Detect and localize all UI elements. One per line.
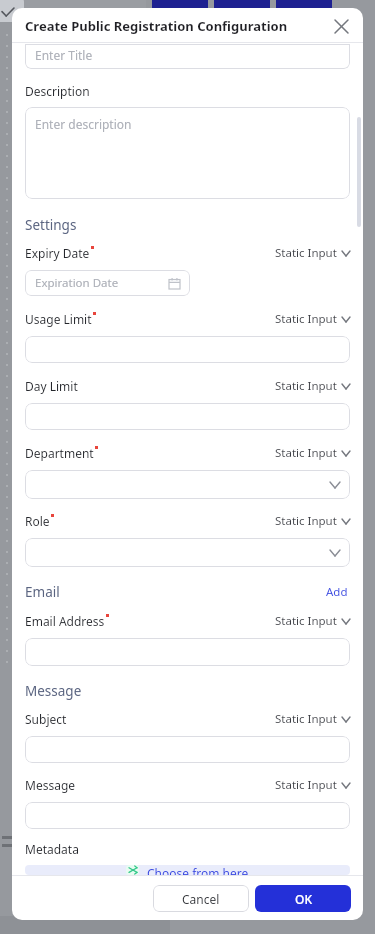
staticText: Static Input — [275, 311, 337, 327]
staticText: Add — [326, 584, 348, 600]
staticText: Static Input — [275, 245, 337, 261]
staticText: Create Public Registration Configuration — [25, 17, 288, 35]
staticText: Expiration Date — [35, 275, 119, 291]
button[interactable]: Close — [329, 14, 353, 38]
staticText: Email — [25, 583, 324, 601]
staticText: Role — [25, 513, 50, 529]
staticText: Static Input — [275, 378, 337, 394]
staticText: Static Input — [275, 613, 337, 629]
button[interactable]: Static Input — [275, 709, 350, 729]
button[interactable] — [25, 538, 350, 567]
button[interactable] — [25, 638, 350, 666]
button[interactable] — [25, 802, 350, 829]
staticText: Settings — [25, 216, 77, 234]
staticText: Message — [25, 682, 82, 700]
staticText: Metadata — [25, 841, 79, 857]
button[interactable]: Static Input — [275, 443, 350, 463]
button[interactable] — [25, 403, 350, 430]
staticText: Static Input — [275, 445, 337, 461]
button[interactable] — [25, 336, 350, 363]
staticText: Static Input — [275, 711, 337, 727]
button[interactable]: Static Input — [275, 309, 350, 329]
staticText: Enter Title — [35, 47, 93, 63]
staticText: OK — [295, 891, 312, 907]
staticText: Email Address — [25, 613, 105, 629]
button[interactable] — [25, 736, 350, 763]
button[interactable]: Static Input — [275, 511, 350, 531]
staticText: Static Input — [275, 777, 337, 793]
button[interactable] — [25, 470, 350, 499]
button[interactable]: Enter description — [25, 107, 350, 199]
staticText: Choose from here — [147, 865, 249, 875]
staticText: Message — [25, 777, 76, 793]
button[interactable]: Choose from here — [25, 865, 350, 875]
staticText: Usage Limit — [25, 311, 92, 327]
staticText: Cancel — [182, 891, 220, 907]
staticText: Static Input — [275, 513, 337, 529]
button[interactable]: Expiration Date — [25, 270, 190, 296]
button[interactable]: Static Input — [275, 243, 350, 263]
staticText: Department — [25, 445, 94, 461]
button[interactable]: Add — [324, 582, 350, 602]
button[interactable]: Cancel — [153, 885, 249, 912]
staticText: Subject — [25, 711, 67, 727]
staticText: Day Limit — [25, 378, 78, 394]
button[interactable]: OK — [255, 885, 351, 912]
button[interactable]: Enter Title — [25, 44, 350, 69]
button[interactable]: Static Input — [275, 611, 350, 631]
button[interactable]: Static Input — [275, 376, 350, 396]
staticText: Enter description — [35, 116, 132, 132]
staticText: Expiry Date — [25, 245, 90, 261]
staticText: Description — [25, 83, 90, 99]
other: Pick date — [169, 278, 180, 289]
button[interactable]: Static Input — [275, 775, 350, 795]
